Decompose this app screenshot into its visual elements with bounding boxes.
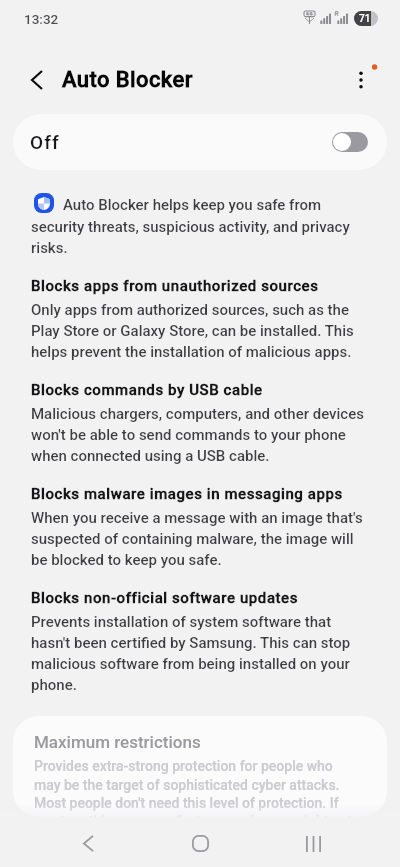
button[interactable]: Maximum restrictions: [13, 716, 387, 817]
staticText: Blocks malware images in messaging apps: [31, 485, 343, 503]
staticText: Malicious chargers, computers, and other…: [31, 405, 369, 464]
staticText: Auto Blocker: [62, 67, 193, 93]
button[interactable]: Home: [172, 820, 228, 867]
staticText: Blocks non-official software updates: [31, 589, 299, 607]
button[interactable]: Back: [60, 820, 116, 867]
staticText: security threats, suspicious activity, a…: [31, 218, 369, 256]
staticText: Provides extra-strong protection for peo…: [34, 758, 354, 817]
button[interactable]: Off: [13, 114, 387, 170]
button[interactable]: Recent apps: [285, 820, 341, 867]
staticText: Auto Blocker helps keep you safe from: [63, 196, 322, 214]
staticText: Blocks apps from unauthorized sources: [31, 277, 319, 295]
staticText: When you receive a message with an image…: [31, 509, 369, 568]
staticText: Prevents installation of system software…: [31, 613, 369, 693]
staticText: Blocks commands by USB cable: [31, 381, 263, 399]
staticText: 13:32: [24, 11, 59, 27]
staticText: Only apps from authorized sources, such …: [31, 301, 369, 360]
staticText: Maximum restrictions: [34, 732, 201, 752]
staticText: 71: [359, 13, 371, 25]
staticText: Off: [30, 131, 60, 153]
button[interactable]: More options: [339, 58, 383, 102]
button[interactable]: Navigate up: [16, 59, 58, 101]
